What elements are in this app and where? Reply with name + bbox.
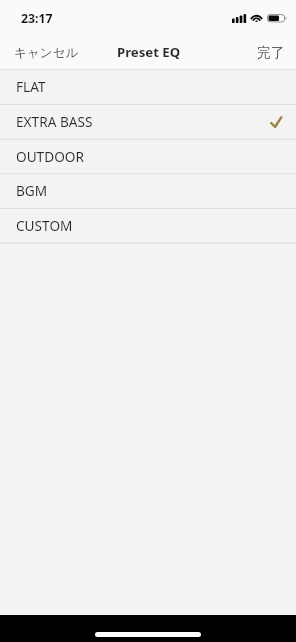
other: Battery — [267, 14, 287, 24]
staticText: CUSTOM — [16, 216, 73, 235]
button[interactable]: 完了 — [245, 37, 296, 70]
staticText: FLAT — [16, 77, 46, 96]
staticText: BGM — [16, 181, 48, 200]
button[interactable]: キャンセル — [0, 37, 89, 69]
button[interactable] — [0, 174, 296, 209]
button[interactable] — [0, 139, 296, 174]
staticText: 23:17 — [21, 10, 53, 27]
staticText: キャンセル — [14, 45, 79, 61]
staticText: EXTRA BASS — [16, 112, 93, 131]
other: Cellular signal — [232, 14, 246, 24]
button[interactable] — [0, 208, 296, 243]
staticText: Preset EQ — [117, 43, 181, 61]
button[interactable] — [0, 70, 296, 105]
staticText: 完了 — [257, 44, 285, 61]
other: Wi-Fi — [250, 14, 263, 24]
staticText: OUTDOOR — [16, 147, 84, 166]
button[interactable] — [0, 104, 296, 139]
